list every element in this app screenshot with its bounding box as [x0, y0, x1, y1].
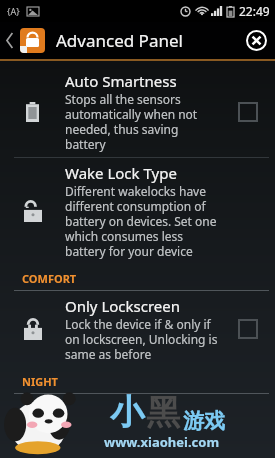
- staticText: Auto Smartness: [65, 71, 177, 91]
- button[interactable]: Wake Lock Type: [0, 158, 275, 264]
- staticText: COMFORT: [22, 271, 77, 286]
- staticText: 黑: [146, 391, 180, 434]
- button[interactable]: Toggle Only Lockscreen: [239, 320, 257, 338]
- staticText: Stops all the sensors automatically when…: [65, 91, 221, 152]
- button[interactable]: Toggle Auto Smartness: [239, 103, 257, 121]
- staticText: 游戏: [183, 408, 225, 434]
- staticText: 22:49: [239, 3, 270, 19]
- staticText: Different wakelocks have different consu…: [65, 183, 221, 259]
- button[interactable]: Close: [238, 22, 275, 59]
- staticText: Wake Lock Type: [65, 163, 177, 183]
- staticText: 小: [110, 391, 144, 434]
- staticText: Lock the device if & only if on lockscre…: [65, 316, 221, 362]
- staticText: www.xiaohei.com: [104, 433, 220, 451]
- button[interactable]: Only Lockscreen: [0, 291, 275, 367]
- staticText: NIGHT: [22, 374, 58, 389]
- button[interactable]: Back: [0, 22, 20, 59]
- button[interactable]: Auto Smartness: [0, 66, 275, 157]
- staticText: {A}: [7, 5, 20, 17]
- staticText: Only Lockscreen: [65, 296, 181, 316]
- staticText: Advanced Panel: [56, 29, 183, 52]
